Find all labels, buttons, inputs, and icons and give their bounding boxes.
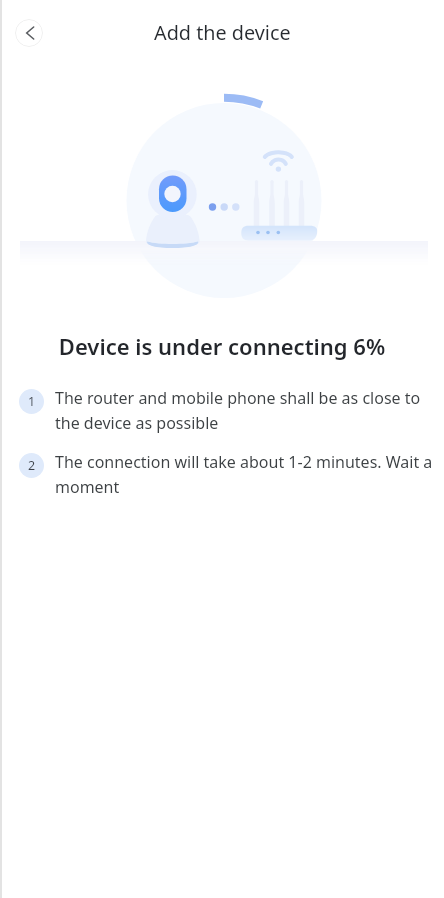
button[interactable]: 2 — [19, 453, 44, 478]
staticText: 1 — [28, 393, 36, 410]
staticText: Device is under connecting 6% — [0, 331, 444, 361]
staticText: 2 — [28, 457, 36, 474]
staticText: The connection will take about 1-2 minut… — [55, 451, 434, 497]
staticText: Add the device — [154, 19, 291, 46]
staticText: The router and mobile phone shall be as … — [55, 387, 434, 433]
button[interactable]: Back — [15, 19, 43, 47]
button[interactable]: 1 — [19, 389, 44, 414]
